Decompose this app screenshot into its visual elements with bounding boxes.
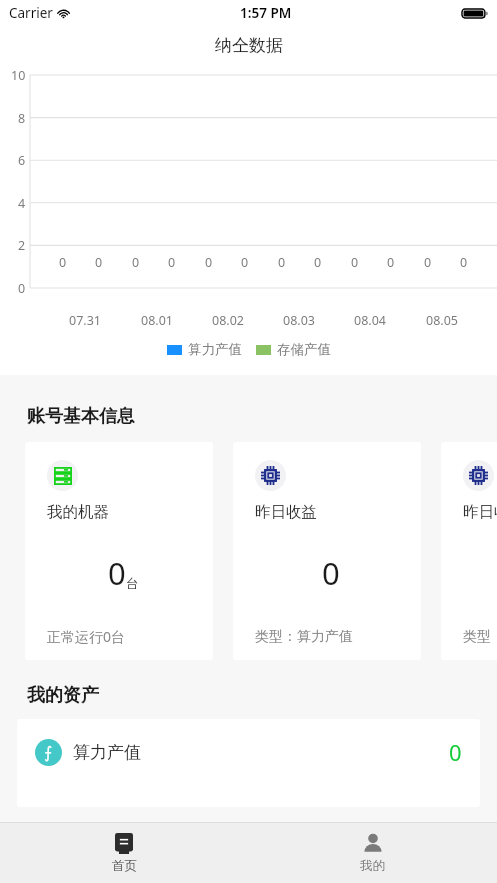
- staticText: 0: [314, 254, 322, 271]
- staticText: 算力产值: [73, 742, 141, 763]
- staticText: 类型：存储产值: [463, 628, 497, 646]
- staticText: 8: [18, 110, 26, 127]
- staticText: 纳仝数据: [215, 35, 283, 56]
- staticText: 6: [18, 152, 26, 169]
- staticText: 类型：算力产值: [255, 628, 353, 646]
- staticText: 10: [11, 67, 26, 84]
- staticText: 0: [449, 737, 462, 767]
- staticText: 08.03: [283, 312, 315, 329]
- button[interactable]: ⨍: [17, 719, 480, 785]
- staticText: 我的资产: [27, 684, 99, 707]
- staticText: 0: [205, 254, 213, 271]
- staticText: 0: [18, 280, 26, 297]
- staticText: 0: [95, 254, 103, 271]
- staticText: 0: [351, 254, 359, 271]
- staticText: 0: [168, 254, 176, 271]
- staticText: 07.31: [69, 312, 101, 329]
- staticText: 账号基本信息: [27, 405, 135, 428]
- staticText: 昨日收益: [255, 502, 317, 522]
- staticText: 0: [424, 254, 432, 271]
- staticText: 我的机器: [47, 502, 109, 522]
- staticText: 算力产值: [188, 341, 242, 358]
- staticText: 0: [387, 254, 395, 271]
- staticText: 存储产值: [277, 341, 331, 358]
- staticText: 正常运行0台: [47, 627, 126, 646]
- staticText: 08.02: [212, 312, 244, 329]
- staticText: ⨍: [44, 743, 53, 762]
- staticText: 1:57 PM: [240, 4, 292, 22]
- button[interactable]: 我的机器: [25, 442, 213, 660]
- button[interactable]: 昨日收益: [441, 442, 497, 660]
- staticText: 2: [18, 237, 26, 254]
- staticText: 昨日收益: [463, 502, 497, 522]
- staticText: 08.05: [426, 312, 458, 329]
- staticText: 08.04: [354, 312, 386, 329]
- staticText: 0: [59, 254, 67, 271]
- staticText: 08.01: [141, 312, 173, 329]
- staticText: 0: [460, 254, 468, 271]
- staticText: 0: [108, 552, 126, 594]
- staticText: 我的: [360, 858, 385, 874]
- button[interactable]: 首页: [0, 823, 248, 883]
- staticText: 台: [126, 575, 139, 591]
- staticText: 0: [322, 552, 340, 594]
- staticText: 0: [241, 254, 249, 271]
- button[interactable]: 昨日收益: [233, 442, 421, 660]
- staticText: Carrier: [9, 4, 53, 22]
- staticText: 4: [18, 195, 26, 212]
- staticText: 0: [278, 254, 286, 271]
- staticText: 首页: [112, 858, 137, 874]
- staticText: 0: [132, 254, 140, 271]
- button[interactable]: 我的: [248, 823, 497, 883]
